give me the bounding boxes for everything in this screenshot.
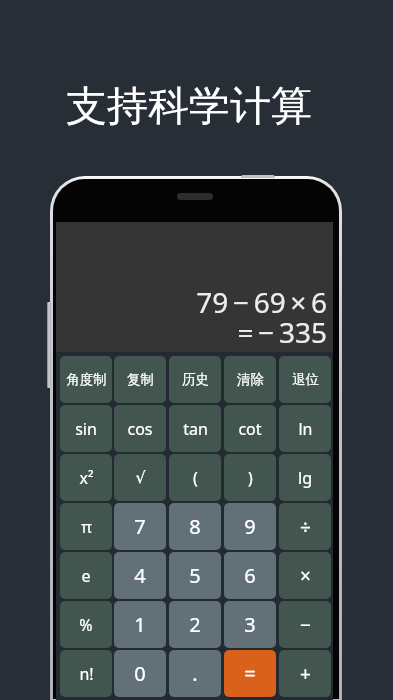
button[interactable]: e bbox=[60, 552, 112, 599]
staticText: n! bbox=[79, 663, 94, 685]
button[interactable]: 6 bbox=[224, 552, 276, 599]
button[interactable]: 0 bbox=[114, 650, 166, 697]
staticText: . bbox=[192, 660, 198, 687]
button[interactable]: 退位 bbox=[279, 356, 331, 403]
button[interactable]: ÷ bbox=[279, 503, 331, 550]
staticText: π bbox=[81, 516, 92, 538]
staticText: cot bbox=[238, 418, 262, 440]
button[interactable]: sin bbox=[60, 405, 112, 452]
staticText: e bbox=[81, 565, 91, 587]
staticText: 清除 bbox=[237, 371, 264, 388]
button[interactable]: = bbox=[224, 650, 276, 697]
button[interactable]: 5 bbox=[169, 552, 221, 599]
button[interactable]: lg bbox=[279, 454, 331, 501]
staticText: ÷ bbox=[300, 514, 311, 540]
staticText: ( bbox=[193, 467, 198, 489]
button[interactable]: % bbox=[60, 601, 112, 648]
button[interactable]: n! bbox=[60, 650, 112, 697]
button[interactable]: 7 bbox=[114, 503, 166, 550]
button[interactable]: ( bbox=[169, 454, 221, 501]
staticText: % bbox=[79, 614, 93, 636]
button[interactable]: π bbox=[60, 503, 112, 550]
button[interactable]: × bbox=[279, 552, 331, 599]
staticText: x² bbox=[79, 467, 94, 489]
staticText: 1 bbox=[134, 611, 146, 638]
staticText: 0 bbox=[134, 660, 146, 687]
staticText: 4 bbox=[134, 562, 146, 589]
button[interactable]: 清除 bbox=[224, 356, 276, 403]
staticText: 7 bbox=[134, 513, 146, 540]
button[interactable]: ) bbox=[224, 454, 276, 501]
button[interactable]: cot bbox=[224, 405, 276, 452]
staticText: √ bbox=[135, 468, 146, 487]
button[interactable]: 2 bbox=[169, 601, 221, 648]
staticText: 历史 bbox=[182, 371, 209, 388]
button[interactable]: tan bbox=[169, 405, 221, 452]
staticText: = − 335 bbox=[60, 313, 327, 351]
staticText: tan bbox=[183, 418, 208, 440]
staticText: ) bbox=[248, 467, 253, 489]
button[interactable]: 历史 bbox=[169, 356, 221, 403]
staticText: 5 bbox=[189, 562, 201, 589]
button[interactable]: x² bbox=[60, 454, 112, 501]
staticText: 8 bbox=[189, 513, 201, 540]
staticText: − bbox=[300, 612, 311, 638]
staticText: = bbox=[244, 660, 256, 687]
button[interactable]: 8 bbox=[169, 503, 221, 550]
button[interactable]: 角度制 bbox=[60, 356, 112, 403]
staticText: sin bbox=[75, 418, 97, 440]
staticText: cos bbox=[127, 418, 153, 440]
staticText: × bbox=[300, 563, 311, 589]
staticText: 79 − 69 × 6 bbox=[60, 283, 327, 321]
button[interactable]: 9 bbox=[224, 503, 276, 550]
staticText: 6 bbox=[244, 562, 256, 589]
button[interactable]: 复制 bbox=[114, 356, 166, 403]
staticText: 退位 bbox=[292, 371, 319, 388]
staticText: 角度制 bbox=[66, 371, 107, 388]
staticText: 复制 bbox=[127, 371, 154, 388]
button[interactable]: ln bbox=[279, 405, 331, 452]
staticText: 支持科学计算 bbox=[66, 81, 312, 133]
button[interactable]: cos bbox=[114, 405, 166, 452]
staticText: ln bbox=[298, 418, 313, 440]
staticText: 3 bbox=[244, 611, 256, 638]
staticText: 2 bbox=[189, 611, 201, 638]
button[interactable]: 3 bbox=[224, 601, 276, 648]
staticText: 9 bbox=[244, 513, 256, 540]
button[interactable]: . bbox=[169, 650, 221, 697]
button[interactable]: 1 bbox=[114, 601, 166, 648]
button[interactable]: 4 bbox=[114, 552, 166, 599]
button[interactable]: + bbox=[279, 650, 331, 697]
button[interactable]: − bbox=[279, 601, 331, 648]
staticText: lg bbox=[298, 467, 312, 489]
staticText: + bbox=[300, 661, 311, 687]
button[interactable]: √ bbox=[114, 454, 166, 501]
